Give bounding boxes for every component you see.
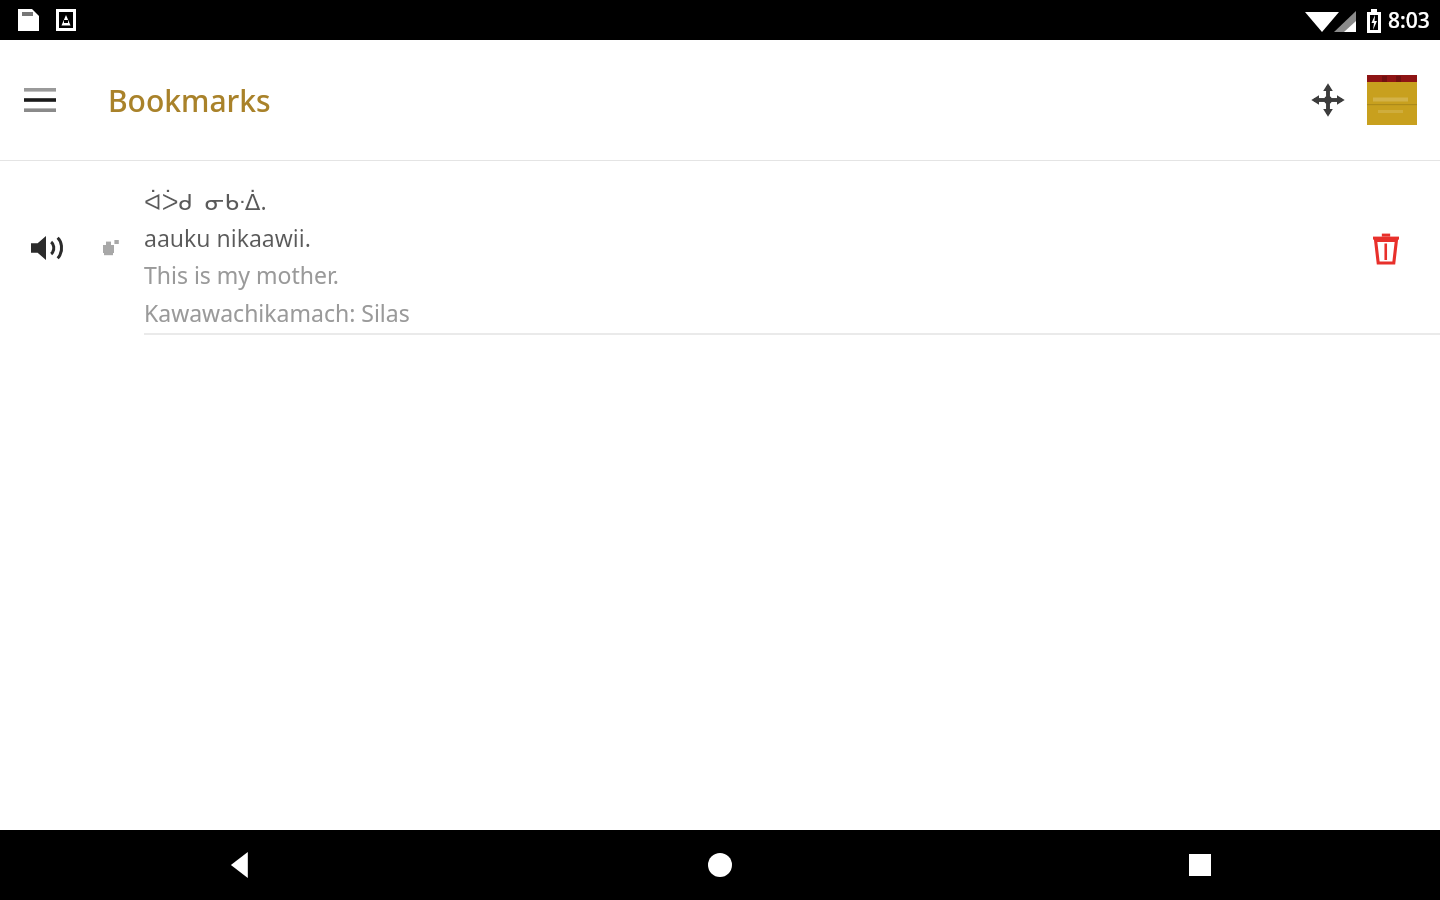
- staticText: aauku nikaawii.: [144, 222, 311, 253]
- staticText: This is my mother.: [144, 259, 339, 290]
- button[interactable]: Back: [0, 830, 480, 900]
- button[interactable]: Play audio: [18, 220, 74, 276]
- button[interactable]: Move: [1302, 74, 1354, 126]
- staticText: 8:03: [1388, 6, 1430, 35]
- staticText: Kawawachikamach: Silas: [144, 297, 410, 328]
- staticText: ᐋᐴᑯ ᓂᑲᐧᐄ.: [144, 185, 267, 216]
- staticText: Bookmarks: [108, 80, 271, 121]
- button[interactable]: Delete bookmark: [1358, 220, 1414, 276]
- button[interactable]: Recent apps: [960, 830, 1440, 900]
- button[interactable]: Play audio: [0, 161, 1440, 335]
- button[interactable]: Current book: [1366, 74, 1418, 126]
- button[interactable]: Open navigation drawer: [8, 68, 72, 132]
- button[interactable]: Home: [480, 830, 960, 900]
